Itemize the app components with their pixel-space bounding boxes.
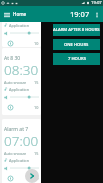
button[interactable]: Alarm details — [7, 104, 14, 111]
button[interactable]: More options — [90, 8, 103, 21]
button[interactable]: Alarms — [2, 0, 41, 47]
button[interactable]: At 8 30 — [2, 48, 41, 115]
button[interactable]: Alarm at 7 — [2, 119, 41, 183]
staticText: Home — [13, 11, 27, 17]
staticText: Auto snooze — [4, 151, 27, 156]
staticText: 07:00 — [4, 132, 39, 150]
staticText: Application default — [9, 158, 39, 163]
staticText: 15 — [34, 80, 39, 85]
staticText: ONE HOURS — [64, 42, 89, 48]
staticText: Application default — [9, 87, 39, 92]
staticText: 7 HOURS — [68, 56, 86, 62]
button[interactable]: ONE HOURS — [53, 39, 100, 50]
staticText: 19:07 — [70, 9, 90, 19]
button[interactable]: Auto snooze — [4, 150, 39, 156]
button[interactable]: Auto snooze — [4, 15, 39, 21]
staticText: 08:30 — [4, 61, 39, 79]
button[interactable]: ALARM AFTER 8 HOURS — [53, 24, 100, 36]
staticText: 10 — [34, 41, 39, 46]
button[interactable]: Application default — [4, 22, 39, 28]
staticText: 10 — [34, 176, 39, 181]
button[interactable]: 7 HOURS — [53, 53, 100, 65]
button[interactable]: Open navigation menu — [0, 8, 13, 21]
staticText: Application default — [9, 23, 39, 28]
staticText: 15 — [34, 151, 39, 156]
button[interactable]: Alarm details — [7, 40, 14, 47]
staticText: Auto snooze — [4, 80, 27, 85]
staticText: 06:00 — [4, 0, 39, 15]
staticText: Alarm at 7 — [4, 126, 29, 133]
button[interactable]: Application default — [4, 157, 39, 163]
staticText: ALARM AFTER 8 HOURS — [53, 27, 100, 33]
staticText: At 8 30 — [4, 55, 21, 62]
staticText: 10 — [34, 105, 39, 110]
staticText: Auto snooze — [4, 16, 27, 21]
staticText: 19:07 — [91, 0, 102, 6]
button[interactable]: Auto snooze — [4, 79, 39, 85]
button[interactable]: Next alarm — [25, 169, 39, 183]
button[interactable]: Application default — [4, 86, 39, 92]
button[interactable]: Alarm details — [7, 175, 14, 182]
